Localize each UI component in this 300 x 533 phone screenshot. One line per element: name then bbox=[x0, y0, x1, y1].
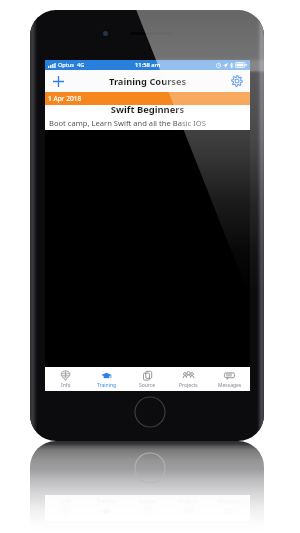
button[interactable]: Messages bbox=[209, 367, 250, 391]
button[interactable]: Source bbox=[127, 367, 168, 391]
button[interactable]: 1 Apr 2018 bbox=[45, 92, 250, 105]
button[interactable]: Settings bbox=[229, 73, 245, 89]
button[interactable]: Info bbox=[45, 367, 86, 391]
staticText: Messages bbox=[218, 382, 242, 389]
staticText: Training bbox=[97, 382, 117, 389]
button[interactable]: Swift Beginners bbox=[45, 105, 250, 130]
button[interactable]: Training bbox=[86, 367, 127, 391]
staticText: 1 Apr 2018 bbox=[48, 94, 82, 103]
staticText: Boot camp, Learn Swift and all the Basic… bbox=[49, 118, 206, 128]
staticText: Training Courses bbox=[109, 75, 187, 88]
staticText: 4G bbox=[77, 61, 85, 69]
staticText: Optus bbox=[58, 61, 74, 69]
staticText: Info bbox=[61, 382, 71, 389]
button[interactable]: Projects bbox=[168, 367, 209, 391]
staticText: Source bbox=[139, 382, 156, 389]
button[interactable]: Add course bbox=[50, 73, 66, 89]
staticText: Projects bbox=[179, 382, 198, 389]
staticText: Swift Beginners bbox=[45, 103, 250, 116]
staticText: 11:58 am bbox=[135, 61, 161, 69]
